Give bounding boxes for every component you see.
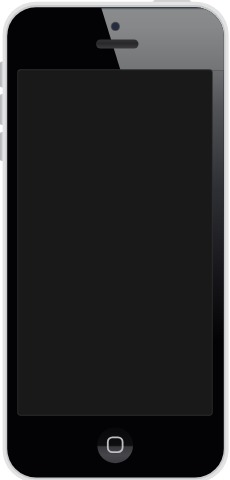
button[interactable]: Power — [153, 0, 191, 8]
button[interactable]: Ring / silent switch — [0, 61, 8, 88]
button[interactable]: Volume up — [0, 94, 8, 125]
button[interactable]: Home button — [97, 427, 133, 463]
button[interactable]: Volume down — [0, 132, 8, 161]
